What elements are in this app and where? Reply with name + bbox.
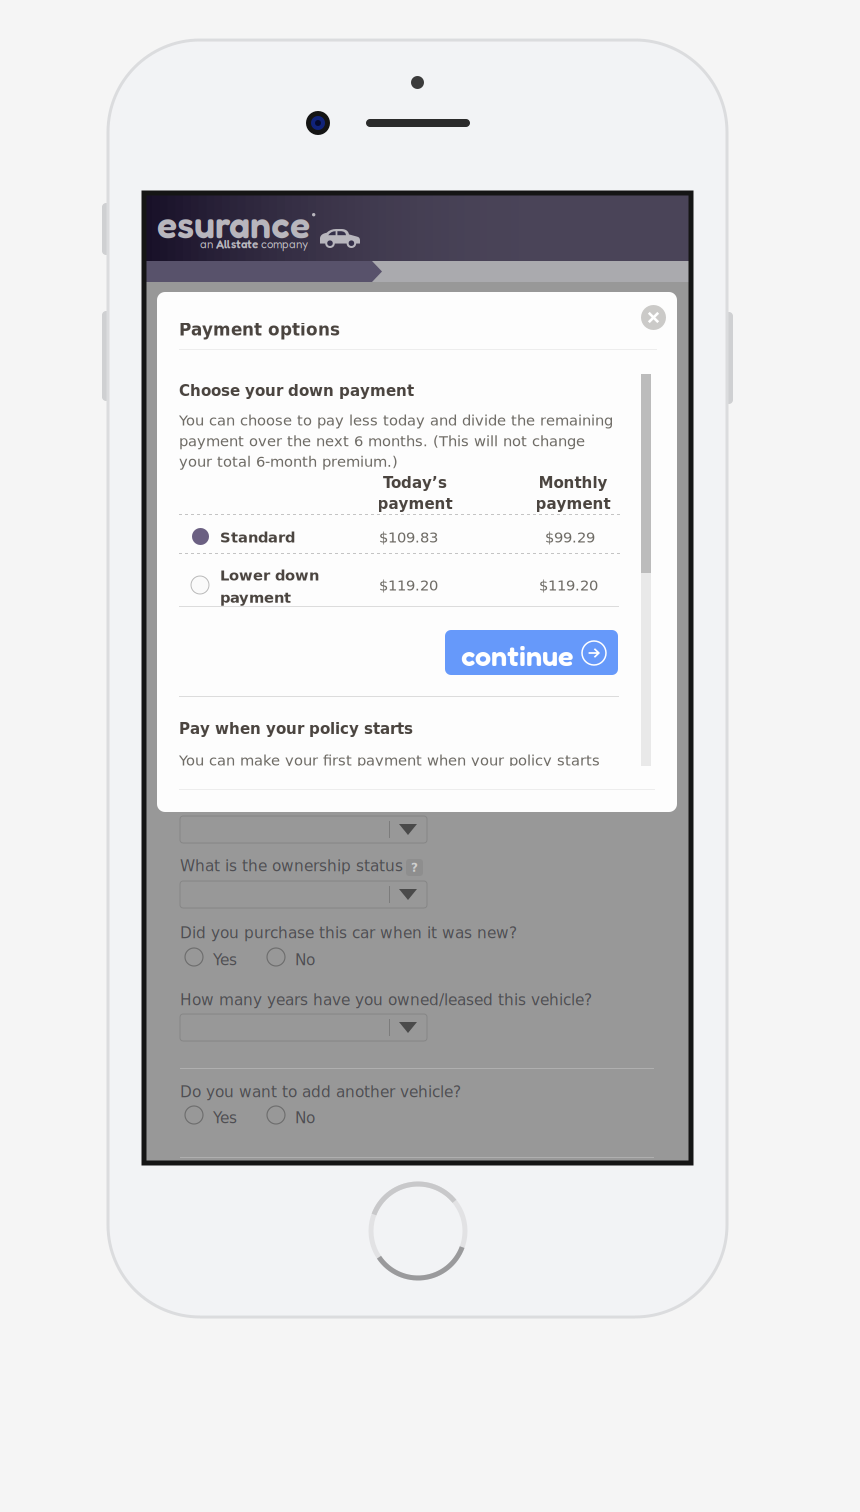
button[interactable]: Yes bbox=[185, 1106, 249, 1125]
staticText: esurance bbox=[157, 202, 310, 247]
button[interactable]: Yes bbox=[185, 948, 249, 967]
staticText: Yes bbox=[213, 951, 237, 969]
staticText: payment over the next 6 months. (This wi… bbox=[179, 433, 585, 450]
staticText: Did you purchase this car when it was ne… bbox=[180, 924, 517, 942]
staticText: payment bbox=[220, 589, 291, 606]
button[interactable]: Close bbox=[641, 305, 666, 330]
button[interactable]: Select bbox=[180, 1014, 427, 1041]
staticText: $109.83 bbox=[379, 529, 438, 546]
staticText: You can make your first payment when you… bbox=[179, 752, 600, 769]
staticText: your total 6-month premium.) bbox=[179, 453, 398, 470]
button[interactable]: Standard bbox=[179, 520, 619, 553]
staticText: ? bbox=[411, 860, 418, 874]
staticText: Today’s bbox=[383, 474, 447, 491]
staticText: Choose your down payment bbox=[179, 382, 414, 399]
staticText: No bbox=[295, 951, 315, 969]
button[interactable]: continue bbox=[445, 630, 618, 675]
staticText: You can choose to pay less today and div… bbox=[179, 412, 613, 429]
staticText: payment bbox=[377, 495, 452, 512]
staticText: No bbox=[295, 1109, 315, 1127]
staticText: Allstate bbox=[216, 237, 258, 251]
staticText: Payment options bbox=[179, 320, 340, 340]
button[interactable]: No bbox=[267, 948, 325, 967]
staticText: Standard bbox=[220, 529, 295, 546]
button[interactable]: Help about ownership status bbox=[406, 859, 423, 876]
staticText: payment bbox=[535, 495, 610, 512]
staticText: What is the ownership status bbox=[180, 857, 403, 875]
staticText: Yes bbox=[213, 1109, 237, 1127]
staticText: an bbox=[200, 237, 213, 251]
staticText: $119.20 bbox=[379, 577, 438, 594]
staticText: Lower down bbox=[220, 567, 319, 584]
button[interactable]: Select bbox=[180, 881, 427, 908]
staticText: $119.20 bbox=[539, 577, 598, 594]
staticText: How many years have you owned/leased thi… bbox=[180, 991, 592, 1009]
staticText: Pay when your policy starts bbox=[179, 720, 413, 737]
button[interactable]: Lower down bbox=[179, 558, 619, 606]
button[interactable]: Select bbox=[180, 816, 427, 843]
staticText: continue bbox=[461, 638, 573, 673]
staticText: Do you want to add another vehicle? bbox=[180, 1083, 461, 1101]
button[interactable]: No bbox=[267, 1106, 325, 1125]
staticText: $99.29 bbox=[545, 529, 595, 546]
staticText: Monthly bbox=[538, 474, 607, 491]
staticText: company bbox=[261, 237, 308, 251]
